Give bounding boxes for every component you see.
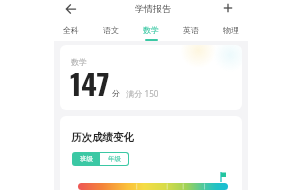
button[interactable]: 数学 bbox=[136, 20, 166, 41]
staticText: 全科 bbox=[63, 25, 79, 35]
button[interactable]: Add bbox=[220, 0, 235, 15]
staticText: 班级 bbox=[80, 155, 93, 163]
staticText: 数学 bbox=[143, 25, 159, 35]
button[interactable]: 英语 bbox=[176, 20, 206, 41]
staticText: 分 bbox=[112, 88, 120, 98]
staticText: 物理 bbox=[223, 25, 239, 35]
button[interactable]: 语文 bbox=[96, 20, 126, 41]
staticText: 数学 bbox=[71, 57, 87, 67]
staticText: 历次成绩变化 bbox=[71, 131, 134, 144]
staticText: 语文 bbox=[103, 25, 119, 35]
button[interactable]: 全科 bbox=[56, 20, 86, 41]
button[interactable]: 班级 bbox=[73, 153, 100, 165]
button[interactable]: 年级 bbox=[100, 153, 128, 165]
staticText: 学情报告 bbox=[135, 3, 171, 14]
button[interactable]: Back bbox=[63, 1, 78, 16]
staticText: 满分 150 bbox=[126, 88, 159, 99]
staticText: 英语 bbox=[183, 25, 199, 35]
staticText: 147 bbox=[70, 61, 110, 105]
staticText: 年级 bbox=[108, 155, 121, 163]
button[interactable]: 数学 bbox=[60, 45, 242, 110]
button[interactable]: 物理 bbox=[216, 20, 246, 41]
